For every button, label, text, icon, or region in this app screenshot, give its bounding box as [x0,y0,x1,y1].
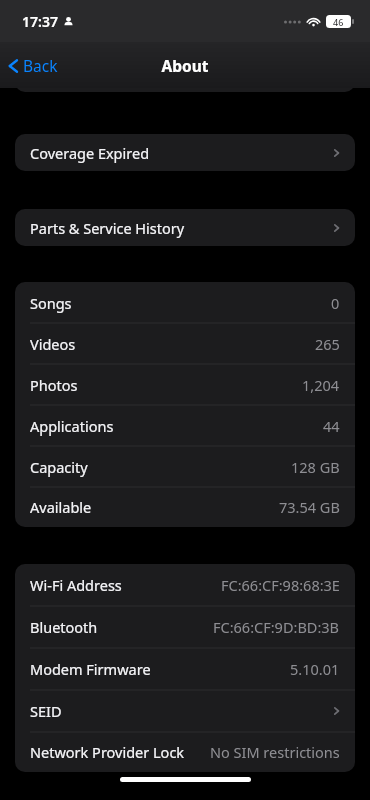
button[interactable]: Coverage Expired [15,134,355,171]
button[interactable]: Applications [15,405,355,446]
staticText: 44 [323,416,340,436]
button[interactable]: Songs [15,282,355,323]
staticText: Wi-Fi Address [30,575,122,595]
button[interactable]: Capacity [15,446,355,487]
button[interactable]: Parts & Service History [15,209,355,246]
button[interactable]: Wi-Fi Address [15,564,355,606]
button[interactable]: Photos [15,364,355,405]
staticText: 17:37 [22,12,58,31]
staticText: FC:66:CF:98:68:3E [221,575,340,595]
staticText: Modem Firmware [30,659,151,679]
staticText: FC:66:CF:9D:BD:3B [213,617,340,637]
staticText: 73.54 GB [279,497,340,517]
staticText: 128 GB [291,457,340,477]
staticText: 265 [315,334,340,354]
staticText: Photos [30,375,78,395]
button[interactable]: Bluetooth [15,606,355,648]
staticText: 0 [331,293,340,313]
staticText: Songs [30,293,72,313]
staticText: 5.10.01 [290,659,340,679]
staticText: Applications [30,416,114,436]
button[interactable]: Videos [15,323,355,364]
button[interactable]: SEID [15,690,355,732]
staticText: About [161,55,209,76]
button[interactable]: Back [0,49,68,82]
button[interactable]: Modem Firmware [15,648,355,690]
staticText: Videos [30,334,76,354]
staticText: Parts & Service History [30,218,185,238]
staticText: SEID [30,701,62,721]
staticText: No SIM restrictions [210,742,340,762]
staticText: 1,204 [302,375,340,395]
button[interactable] [15,60,355,92]
button[interactable]: Available [15,487,355,527]
staticText: Back [23,55,58,76]
staticText: 46 [333,16,344,28]
staticText: Bluetooth [30,617,98,637]
staticText: Coverage Expired [30,143,150,163]
staticText: Capacity [30,457,88,477]
staticText: Available [30,497,92,517]
staticText: Network Provider Lock [30,742,185,762]
button[interactable]: Network Provider Lock [15,732,355,772]
